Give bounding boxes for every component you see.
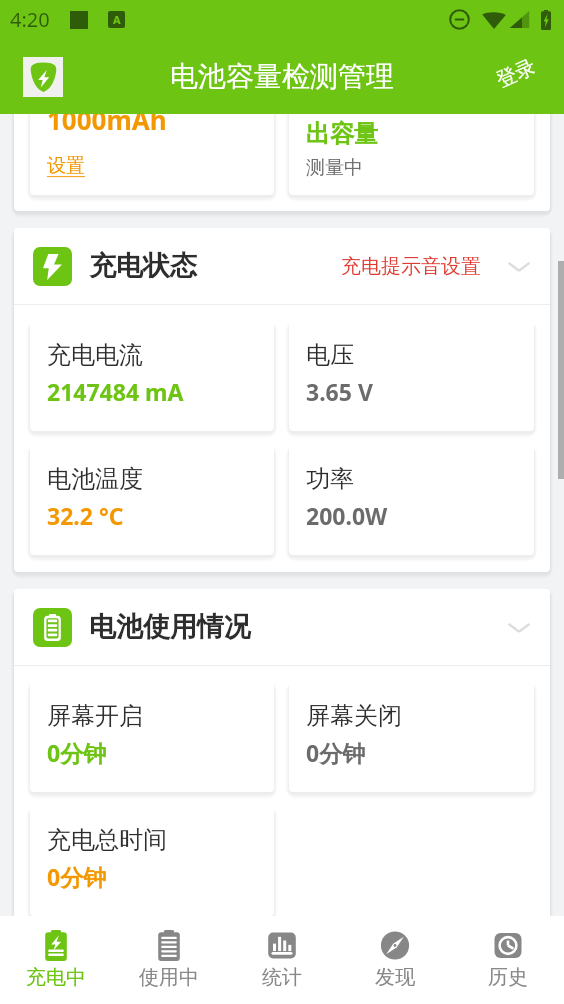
button[interactable]: 充电提示音设置 <box>341 254 481 279</box>
button[interactable]: 历史 <box>451 916 564 1004</box>
button[interactable]: 屏幕开启 <box>30 682 274 792</box>
staticText: 1000mAh <box>47 102 167 137</box>
staticText: 登录 <box>493 54 539 93</box>
staticText: 0分钟 <box>306 737 366 768</box>
button[interactable]: 电池使用情况 <box>14 589 550 665</box>
staticText: 32.2 °C <box>47 500 124 531</box>
staticText: 3.65 V <box>306 376 373 407</box>
button[interactable]: 设置 <box>47 154 85 178</box>
staticText: 使用中 <box>139 965 199 990</box>
staticText: 充电状态 <box>89 249 197 283</box>
button[interactable]: 充电电流 <box>30 321 274 431</box>
staticText: 充电中 <box>26 965 86 990</box>
button[interactable]: 电压 <box>289 321 534 431</box>
staticText: A <box>113 12 121 27</box>
staticText: 电池使用情况 <box>89 610 251 644</box>
staticText: 电压 <box>306 340 354 370</box>
staticText: 出容量 <box>306 119 378 149</box>
button[interactable]: Expand <box>506 253 532 279</box>
staticText: 200.0W <box>306 500 388 531</box>
button[interactable]: 屏幕关闭 <box>289 682 534 792</box>
staticText: 0分钟 <box>47 737 107 768</box>
staticText: 统计 <box>262 965 302 990</box>
button[interactable]: 1000mAh <box>30 85 274 195</box>
button[interactable]: 功率 <box>289 445 534 555</box>
staticText: 电池容量检测管理 <box>170 59 394 94</box>
staticText: 发现 <box>375 965 415 990</box>
button[interactable]: 充电中 <box>0 916 112 1004</box>
staticText: 电池温度 <box>47 464 143 494</box>
staticText: 充电电流 <box>47 340 143 370</box>
staticText: 历史 <box>488 965 528 990</box>
button[interactable]: 使用中 <box>112 916 225 1004</box>
staticText: 功率 <box>306 464 354 494</box>
staticText: 0分钟 <box>47 861 107 892</box>
button[interactable]: 充电状态 <box>14 228 550 304</box>
button[interactable]: 电池温度 <box>30 445 274 555</box>
staticText: 4:20 <box>10 6 50 33</box>
button[interactable]: 充电总时间 <box>30 806 274 916</box>
staticText: 屏幕关闭 <box>306 701 402 731</box>
button[interactable]: App icon <box>23 57 63 97</box>
staticText: 屏幕开启 <box>47 701 143 731</box>
button[interactable]: 发现 <box>338 916 451 1004</box>
button[interactable]: Expand <box>506 614 532 640</box>
staticText: 充电总时间 <box>47 825 167 855</box>
button[interactable]: 出容量 <box>289 85 534 195</box>
staticText: 2147484 mA <box>47 376 184 407</box>
staticText: 测量中 <box>306 156 363 180</box>
button[interactable]: 统计 <box>225 916 338 1004</box>
button[interactable]: 登录 <box>488 53 544 94</box>
